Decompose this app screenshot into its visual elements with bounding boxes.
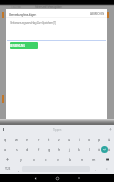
button[interactable]: f [33, 144, 44, 154]
staticText: d [26, 147, 29, 152]
button[interactable]: g [44, 144, 54, 154]
staticText: u [68, 137, 71, 142]
staticText: m [92, 157, 96, 162]
staticText: ?123 [5, 167, 10, 171]
staticText: , [18, 167, 19, 172]
staticText: v [57, 157, 59, 162]
staticText: t [48, 137, 50, 142]
staticText: Fahrer und Fahrzeugdaten [35, 5, 62, 9]
button[interactable]: o [84, 134, 94, 144]
button[interactable]: Recents [68, 174, 90, 182]
button[interactable]: s [11, 144, 22, 154]
button[interactable]: k [74, 144, 84, 154]
button[interactable]: Shift [0, 154, 14, 164]
button[interactable]: Voice input settings [1, 127, 6, 132]
staticText: k [78, 147, 80, 152]
staticText: o [88, 137, 91, 142]
button[interactable]: u [64, 134, 74, 144]
button[interactable]: Back [24, 174, 46, 182]
staticText: n [81, 157, 84, 162]
staticText: 13:41 Mo [11, 5, 21, 9]
button[interactable]: Home [46, 174, 68, 182]
button[interactable]: m [88, 154, 100, 164]
button[interactable]: q [0, 134, 11, 144]
staticText: = [106, 167, 108, 171]
staticText: x [33, 157, 35, 162]
button[interactable]: l [84, 144, 94, 154]
staticText: e [26, 137, 29, 142]
staticText: ä [108, 147, 111, 152]
button[interactable]: w [11, 134, 22, 144]
staticText: ö [98, 147, 101, 152]
staticText: ABBRECHEN [90, 12, 105, 16]
button[interactable]: v [52, 154, 64, 164]
button[interactable]: BEMERKUNG SPEICHERN [10, 42, 38, 49]
button[interactable]: t [44, 134, 54, 144]
staticText: c [45, 157, 47, 162]
staticText: ü [108, 137, 111, 142]
staticText: l [89, 147, 90, 152]
staticText: r [38, 137, 40, 142]
button[interactable]: ä [104, 144, 114, 154]
staticText: Verbesserungsvorschlag: Zum Speichern [1… [10, 21, 56, 25]
button[interactable]: ?123 [0, 164, 14, 174]
button[interactable]: , [14, 164, 22, 174]
staticText: w [15, 137, 18, 142]
button[interactable]: r [33, 134, 44, 144]
button[interactable]: b [64, 154, 76, 164]
staticText: b [69, 157, 72, 162]
staticText: p [98, 137, 101, 142]
staticText: y [20, 157, 22, 162]
button[interactable]: j [64, 144, 74, 154]
staticText: Tippen [53, 128, 62, 132]
button[interactable]: ö [94, 144, 104, 154]
button[interactable]: i [74, 134, 84, 144]
staticText: f [38, 147, 40, 152]
button[interactable]: p [94, 134, 104, 144]
staticText: q [4, 137, 7, 142]
button[interactable]: ü [104, 134, 114, 144]
staticText: Bemerkung hinzufügen [9, 12, 36, 17]
button[interactable]: h [54, 144, 64, 154]
staticText: h [58, 147, 61, 152]
staticText: a [4, 147, 7, 152]
button[interactable]: a [0, 144, 11, 154]
staticText: j [69, 147, 70, 152]
staticText: g [48, 147, 51, 152]
button[interactable]: e [22, 134, 33, 144]
button[interactable]: = [100, 164, 114, 174]
button[interactable]: Backspace [100, 154, 114, 164]
button[interactable]: Enter [101, 146, 108, 153]
staticText: i [79, 137, 80, 142]
button[interactable]: x [27, 154, 40, 164]
staticText: z [58, 137, 60, 142]
button[interactable]: c [40, 154, 52, 164]
button[interactable]: d [22, 144, 33, 154]
button[interactable]: n [76, 154, 88, 164]
button[interactable]: y [14, 154, 27, 164]
button[interactable]: ABBRECHEN [88, 11, 107, 17]
button[interactable]: More options [108, 127, 113, 132]
staticText: s [16, 147, 18, 152]
staticText: . [95, 167, 96, 172]
button[interactable]: z [54, 134, 64, 144]
staticText: BEMERKUNG SPEICHERN [10, 44, 38, 48]
